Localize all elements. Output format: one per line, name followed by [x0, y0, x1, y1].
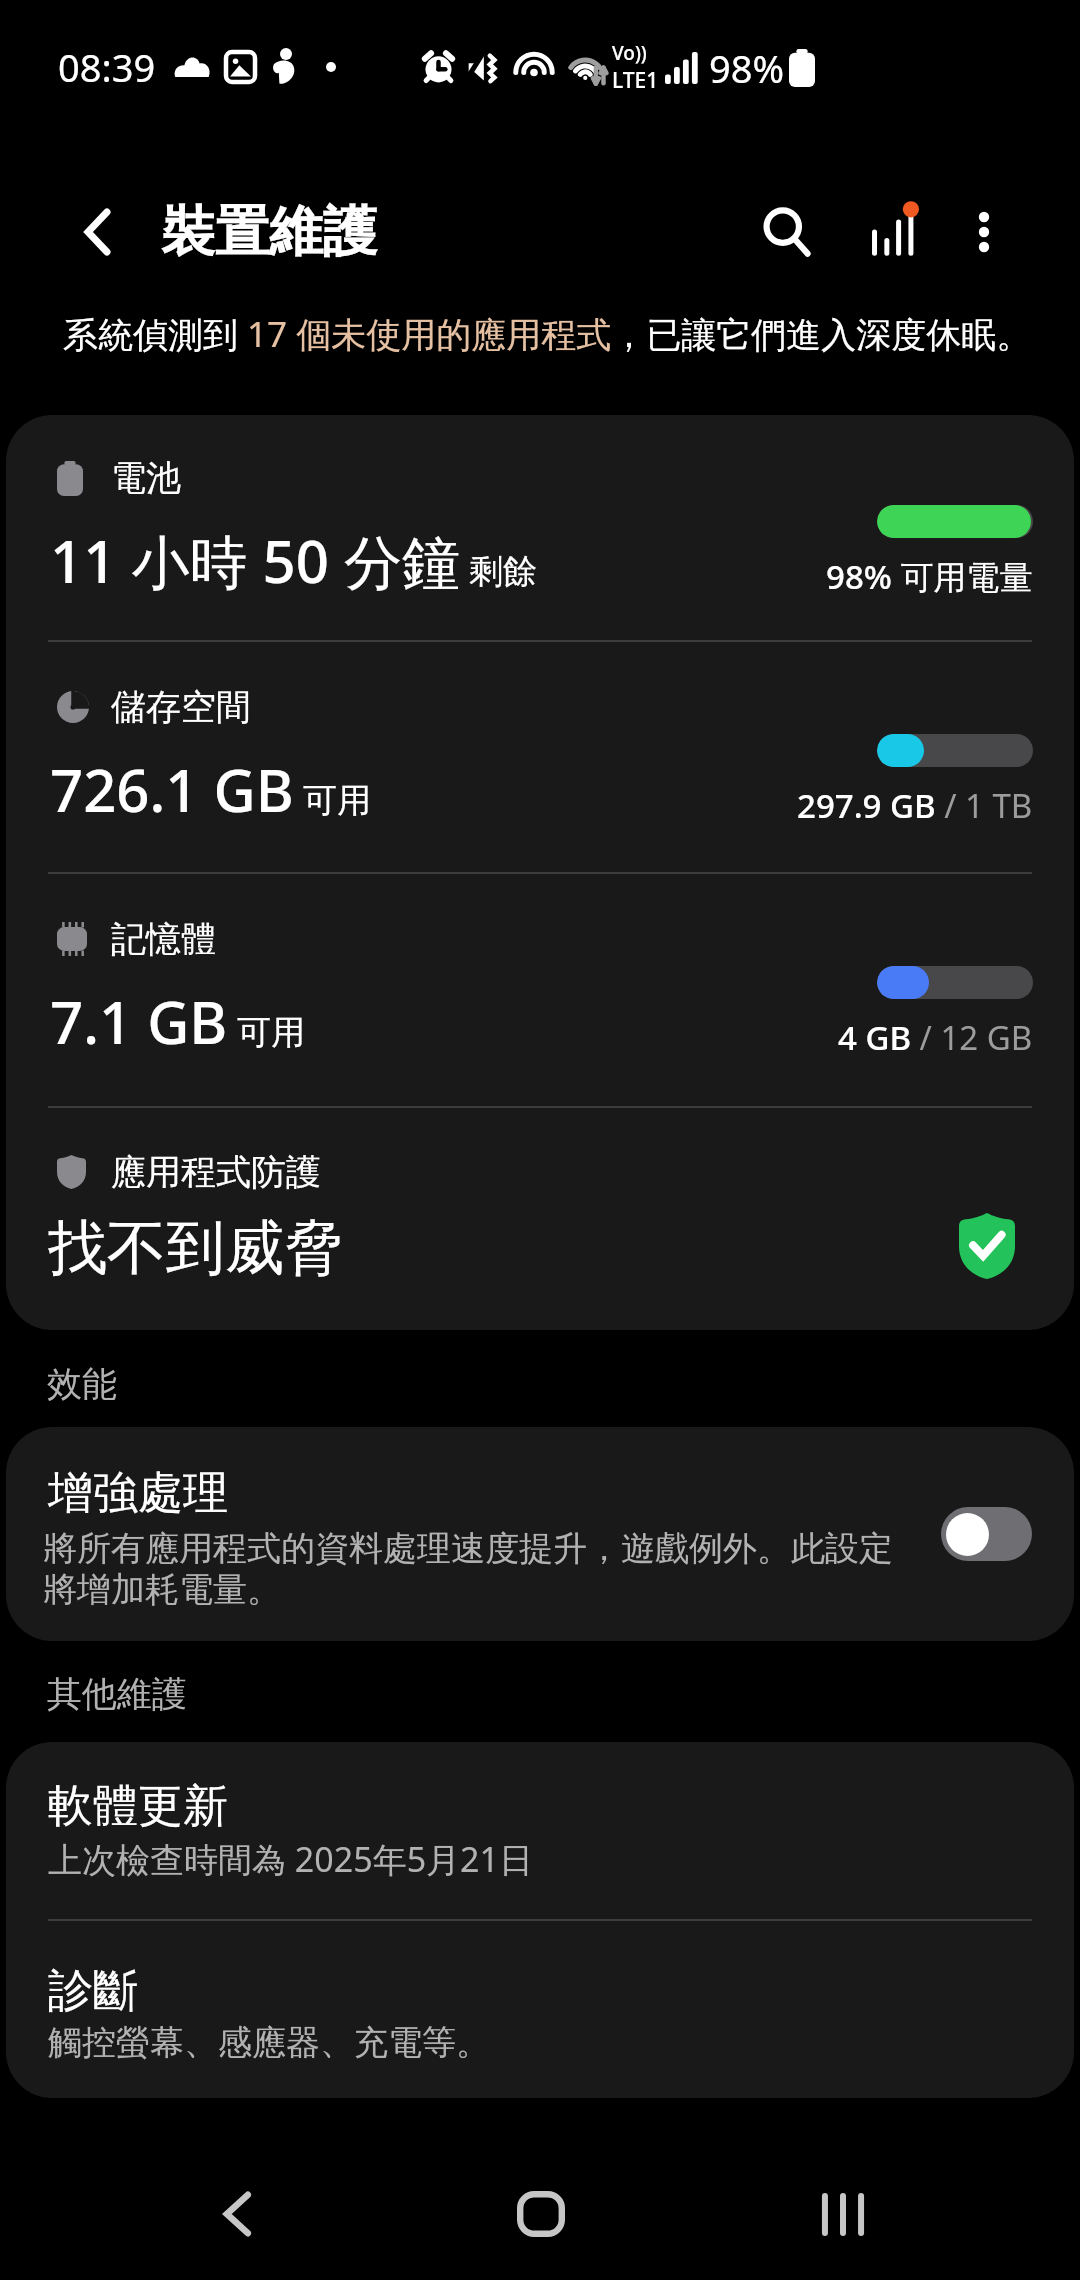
staticText: 98% — [709, 42, 785, 94]
staticText: 08:39 — [58, 41, 156, 93]
staticText: 可用 — [237, 1011, 305, 1054]
button[interactable]: 電池 — [6, 415, 1074, 640]
button[interactable]: Recent apps — [779, 2150, 907, 2278]
staticText: 726.1 GB — [50, 750, 294, 829]
staticText: 上次檢查時間為 2025年5月21日 — [48, 1836, 533, 1882]
staticText: 找不到威脅 — [48, 1211, 343, 1285]
staticText: Vo)) — [612, 40, 647, 66]
button[interactable]: 儲存空間 — [6, 642, 1074, 872]
button[interactable]: Back — [173, 2150, 301, 2278]
staticText: 11 小時 50 分鐘 — [50, 521, 460, 600]
staticText: 診斷 — [48, 1963, 138, 2020]
staticText: 7.1 GB — [50, 982, 228, 1061]
button[interactable]: More options — [928, 176, 1040, 288]
button[interactable]: 記憶體 — [6, 874, 1074, 1106]
button[interactable]: Back — [43, 176, 155, 288]
staticText: 剩餘 — [469, 550, 537, 593]
staticText: 可用 — [303, 779, 371, 822]
button[interactable]: 應用程式防護 — [6, 1108, 1074, 1330]
button[interactable]: 增強處理 — [6, 1427, 1074, 1641]
button[interactable]: 診斷 — [6, 1921, 1074, 2098]
staticText: 應用程式防護 — [111, 1150, 321, 1194]
button[interactable]: 軟體更新 — [6, 1742, 1074, 1919]
staticText: LTE1 — [612, 66, 659, 95]
staticText: 4 GB / 12 GB — [838, 1015, 1033, 1060]
staticText: 其他維護 — [47, 1672, 187, 1716]
staticText: 98% 可用電量 — [826, 554, 1033, 599]
staticText: 記憶體 — [111, 917, 216, 961]
staticText: 增強處理 — [48, 1465, 228, 1522]
staticText: 電池 — [111, 456, 181, 500]
staticText: 儲存空間 — [111, 685, 251, 729]
staticText: 297.9 GB / 1 TB — [797, 783, 1033, 828]
button[interactable]: Search — [730, 176, 842, 288]
button[interactable]: Usage statistics — [837, 176, 949, 288]
staticText: 效能 — [47, 1362, 117, 1406]
staticText: 觸控螢幕、感應器、充電等。 — [48, 2021, 490, 2064]
staticText: 系統偵測到 17 個未使用的應用程式，已讓它們進入深度休眠。 — [63, 310, 1080, 358]
button[interactable]: Enhanced processing toggle, off — [941, 1507, 1032, 1561]
staticText: 裝置維護 — [161, 198, 377, 266]
staticText: 軟體更新 — [48, 1778, 228, 1835]
staticText: 將所有應用程式的資料處理速度提升，遊戲例外。此設定將增加耗電量。 — [43, 1527, 901, 1611]
button[interactable]: Home — [477, 2150, 605, 2278]
